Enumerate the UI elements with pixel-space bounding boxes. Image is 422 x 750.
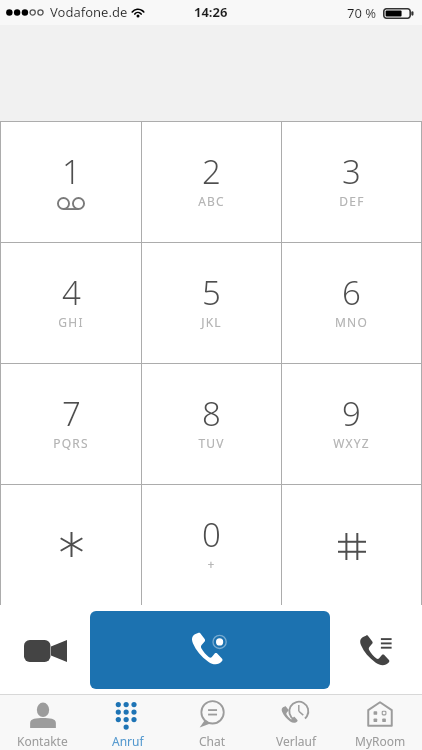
- staticText: 9: [342, 391, 361, 436]
- button[interactable]: [1, 485, 141, 605]
- button[interactable]: 0: [142, 485, 281, 605]
- staticText: Verlauf: [276, 733, 317, 749]
- staticText: 8: [202, 391, 221, 436]
- staticText: Chat: [199, 733, 226, 749]
- staticText: Vodafone.de: [50, 3, 128, 21]
- staticText: Anruf: [112, 733, 144, 749]
- staticText: 2: [202, 149, 221, 194]
- staticText: 5: [202, 270, 221, 315]
- staticText: MyRoom: [355, 733, 406, 749]
- staticText: 1: [62, 149, 81, 194]
- staticText: GHI: [58, 314, 84, 330]
- button[interactable]: 8: [142, 364, 281, 484]
- staticText: ABC: [198, 193, 225, 209]
- button[interactable]: Call: [90, 611, 330, 689]
- button[interactable]: 3: [282, 122, 421, 242]
- staticText: JKL: [201, 314, 222, 330]
- button[interactable]: 5: [142, 243, 281, 363]
- button[interactable]: 2: [142, 122, 281, 242]
- button[interactable]: 6: [282, 243, 421, 363]
- staticText: 3: [342, 149, 361, 194]
- button[interactable]: Video call: [16, 612, 74, 670]
- button[interactable]: 7: [1, 364, 141, 484]
- staticText: WXYZ: [333, 435, 370, 451]
- staticText: 70 %: [347, 4, 377, 22]
- staticText: PQRS: [53, 435, 89, 451]
- staticText: 6: [342, 270, 361, 315]
- button[interactable]: 4: [1, 243, 141, 363]
- staticText: +: [207, 556, 216, 572]
- staticText: MNO: [335, 314, 368, 330]
- staticText: 0: [202, 512, 221, 557]
- button[interactable]: [282, 485, 421, 605]
- button[interactable]: 9: [282, 364, 421, 484]
- button[interactable]: MyRoom: [338, 695, 422, 750]
- button[interactable]: Verlauf: [254, 695, 338, 750]
- staticText: 4: [62, 270, 81, 315]
- staticText: Kontakte: [17, 733, 68, 749]
- button[interactable]: Anruf: [85, 695, 170, 750]
- staticText: DEF: [339, 193, 365, 209]
- button[interactable]: 1: [1, 122, 141, 242]
- staticText: 14:26: [194, 3, 228, 21]
- staticText: TUV: [198, 435, 225, 451]
- button[interactable]: Call history: [344, 616, 400, 672]
- button[interactable]: Kontakte: [0, 695, 85, 750]
- button[interactable]: Chat: [170, 695, 254, 750]
- staticText: 7: [62, 391, 81, 436]
